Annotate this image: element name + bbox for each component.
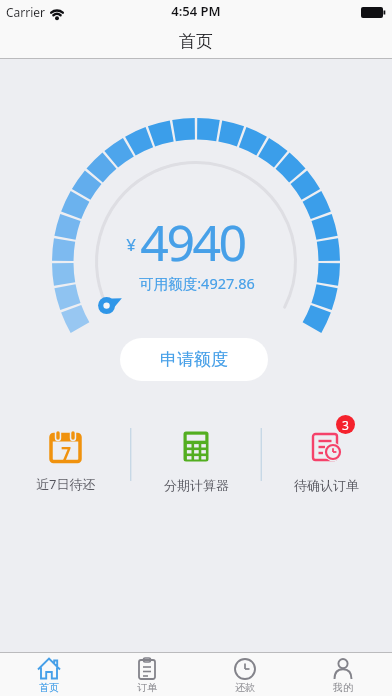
button[interactable]: 分期计算器 [131, 415, 262, 495]
staticText: 近7日待还 [36, 475, 96, 493]
button[interactable]: 首页 [0, 652, 98, 696]
staticText: Carrier [6, 4, 46, 20]
staticText: ¥ [126, 233, 136, 256]
staticText: 4940 [140, 208, 245, 276]
staticText: 分期计算器 [164, 477, 229, 493]
staticText: 申请额度 [160, 349, 228, 370]
button[interactable]: 待确认订单 [261, 415, 392, 495]
staticText: 7 [61, 442, 71, 462]
button[interactable]: 还款 [196, 652, 294, 696]
staticText: 首页 [179, 31, 213, 52]
staticText: 首页 [39, 681, 59, 694]
button[interactable]: 近7日待还 [0, 415, 131, 495]
button[interactable]: 订单 [98, 652, 196, 696]
button[interactable]: 我的 [294, 652, 392, 696]
staticText: 3 [342, 417, 349, 433]
staticText: 还款 [235, 681, 255, 694]
button[interactable]: 申请额度 [120, 338, 268, 381]
staticText: 4:54 PM [171, 2, 221, 20]
staticText: 我的 [333, 681, 353, 694]
staticText: 待确认订单 [294, 477, 359, 493]
staticText: 可用额度:4927.86 [139, 273, 255, 293]
staticText: 订单 [137, 681, 157, 694]
